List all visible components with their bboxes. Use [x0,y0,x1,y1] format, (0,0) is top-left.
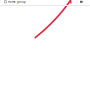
button[interactable]: More [80,1,83,3]
staticText: Home group [8,0,26,4]
button[interactable]: Group [4,1,7,3]
